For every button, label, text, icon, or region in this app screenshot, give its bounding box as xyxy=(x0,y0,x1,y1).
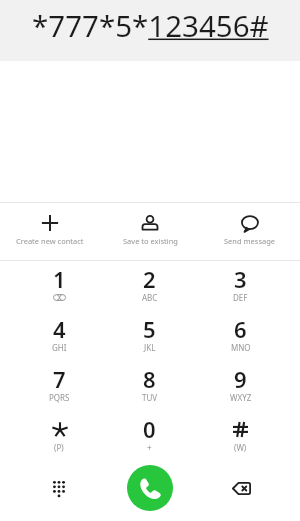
staticText: *777*5*123456# xyxy=(32,5,269,45)
staticText: Create new contact xyxy=(16,236,84,246)
button[interactable]: 1 xyxy=(14,261,104,311)
button[interactable]: 2 xyxy=(104,261,195,311)
staticText: PQRS xyxy=(49,392,70,403)
staticText: JKL xyxy=(144,342,156,353)
staticText: GHI xyxy=(52,342,67,353)
button[interactable]: Create new contact xyxy=(0,203,100,260)
button[interactable]: (W) xyxy=(195,411,286,461)
staticText: Send message xyxy=(224,236,276,246)
staticText: WXYZ xyxy=(230,392,252,403)
button[interactable]: 7 xyxy=(14,361,104,411)
button[interactable]: 5 xyxy=(104,311,195,361)
button[interactable]: Call xyxy=(127,465,173,511)
staticText: 2 xyxy=(143,264,156,294)
staticText: MNO xyxy=(231,342,251,353)
button[interactable]: 3 xyxy=(195,261,286,311)
button[interactable]: Backspace xyxy=(219,466,263,510)
button[interactable]: 8 xyxy=(104,361,195,411)
button[interactable]: 9 xyxy=(195,361,286,411)
staticText: 4 xyxy=(53,314,66,344)
staticText: ABC xyxy=(142,292,158,303)
staticText: + xyxy=(147,442,152,453)
staticText: 7 xyxy=(53,364,66,394)
staticText: 8 xyxy=(143,364,156,394)
staticText: TUV xyxy=(142,392,158,403)
staticText: (W) xyxy=(234,442,247,453)
staticText: Save to existing xyxy=(123,236,178,246)
staticText: 9 xyxy=(234,364,247,394)
button[interactable]: 0 xyxy=(104,411,195,461)
button[interactable]: (P) xyxy=(14,411,104,461)
staticText: 1 xyxy=(53,264,66,294)
staticText: 0 xyxy=(143,414,156,444)
staticText: DEF xyxy=(233,292,248,303)
staticText: 3 xyxy=(234,264,247,294)
button[interactable]: Send message xyxy=(200,203,300,260)
staticText: 6 xyxy=(234,314,247,344)
staticText: 5 xyxy=(143,314,156,344)
button[interactable]: 4 xyxy=(14,311,104,361)
staticText: (P) xyxy=(54,442,64,453)
button[interactable]: Show dialpad xyxy=(37,466,81,510)
button[interactable]: Save to existing xyxy=(100,203,200,260)
button[interactable]: 6 xyxy=(195,311,286,361)
